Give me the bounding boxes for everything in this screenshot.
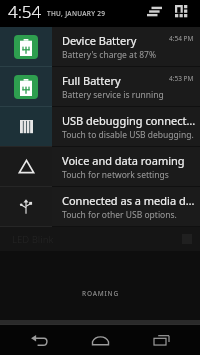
button[interactable]: Back — [17, 325, 61, 355]
staticText: Voice and data roaming — [62, 153, 185, 168]
button[interactable]: Home — [78, 325, 122, 355]
staticText: Touch for other USB options. — [62, 209, 177, 221]
staticText: Battery service is running — [62, 89, 164, 101]
button[interactable]: Full Battery — [0, 67, 200, 106]
staticText: Touch to disable USB debugging. — [62, 129, 194, 141]
staticText: Connected as a media device — [62, 193, 196, 208]
staticText: 4:53 PM — [169, 74, 194, 83]
staticText: Touch for network settings — [62, 169, 169, 181]
button[interactable]: Device Battery — [0, 27, 200, 66]
button[interactable]: USB debugging connected — [0, 107, 200, 146]
staticText: 4:54 — [8, 0, 42, 23]
button[interactable]: Recent apps — [139, 325, 183, 355]
staticText: ROAMING — [82, 289, 119, 298]
staticText: 4:54 PM — [169, 34, 194, 43]
button[interactable]: Voice and data roaming — [0, 147, 200, 186]
button[interactable]: Connected as a media device — [0, 187, 200, 226]
staticText: THU, JANUARY 29 — [47, 9, 106, 18]
staticText: Full Battery — [62, 73, 121, 88]
staticText: Battery's charge at 87% — [62, 49, 156, 61]
staticText: LED Blink — [12, 233, 54, 246]
staticText: Device Battery — [62, 33, 137, 48]
button[interactable]: Cast screen — [143, 1, 165, 23]
staticText: USB debugging connected — [62, 113, 196, 128]
button[interactable]: Quick settings — [171, 1, 193, 23]
